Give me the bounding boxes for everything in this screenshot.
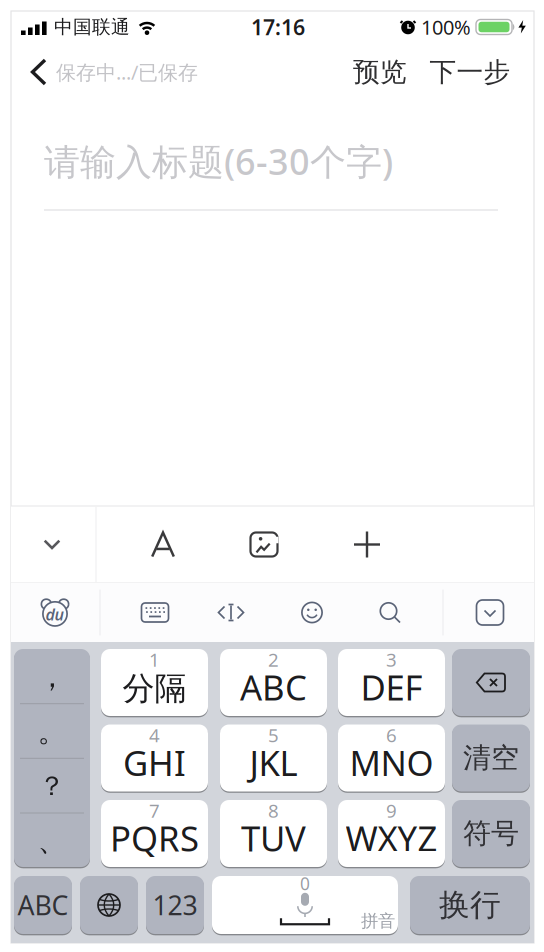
button[interactable]: 4 [101,724,208,791]
staticText: ？ [38,770,65,802]
button[interactable]: 1 [101,649,208,716]
staticText: 1 [149,647,160,672]
staticText: 5 [268,723,279,747]
staticText: 换行 [439,886,501,924]
staticText: MNO [349,739,433,785]
staticText: 9 [386,798,397,823]
staticText: 清空 [463,741,519,775]
staticText: 中国联通 [54,15,130,38]
staticText: 100% [421,14,471,40]
button[interactable]: ABC [14,876,72,934]
staticText: 。 [37,713,66,749]
staticText: 7 [149,798,160,823]
button[interactable]: 换行 [410,876,530,934]
staticText: TUV [241,815,306,861]
staticText: 2 [268,647,279,672]
button[interactable]: 2 [220,649,327,716]
button[interactable]: 清空 [452,724,530,791]
staticText: 分隔 [122,669,186,708]
staticText: 拼音 [361,910,395,932]
button[interactable]: 9 [338,800,445,867]
button[interactable]: 空格 [212,876,398,934]
staticText: WXYZ [345,815,437,861]
button[interactable]: 返回 [30,50,200,94]
staticText: 符号 [463,816,519,851]
staticText: ， [37,659,66,695]
button[interactable]: 收起工具栏 [470,590,510,634]
button[interactable]: 搜索 [368,590,412,634]
button[interactable]: 7 [101,800,208,867]
staticText: 保存中.../已保存 [56,59,198,85]
staticText: 6 [386,723,397,747]
staticText: GHI [123,739,186,785]
button[interactable]: 收起键盘 [30,522,74,566]
staticText: 请输入标题(6-30个字) [44,137,393,185]
staticText: 123 [152,887,197,923]
button[interactable]: 更多 [345,522,389,566]
staticText: ABC [240,664,307,710]
staticText: 、 [37,822,66,858]
button[interactable]: 6 [338,724,445,791]
button[interactable]: 插入图片 [242,522,286,566]
button[interactable]: 预览 [345,50,415,94]
staticText: ABC [17,887,68,923]
staticText: 0 [300,872,310,895]
button[interactable]: 文字样式 [141,522,185,566]
staticText: JKL [249,739,297,785]
staticText: 17:16 [251,13,305,41]
button[interactable]: 下一步 [415,50,525,94]
button[interactable]: 切换输入法 [80,876,138,934]
button[interactable]: 删除 [452,649,530,716]
staticText: 3 [386,647,397,672]
staticText: du [45,604,64,625]
staticText: PQRS [110,815,199,861]
button[interactable]: 123 [146,876,204,934]
button[interactable]: 键盘切换 [133,590,177,634]
staticText: 4 [149,723,160,747]
button[interactable]: 3 [338,649,445,716]
staticText: 预览 [353,56,407,88]
button[interactable]: 符号 [452,800,530,867]
button[interactable]: 8 [220,800,327,867]
button[interactable]: 5 [220,724,327,791]
button[interactable]: 表情 [290,590,334,634]
button[interactable]: 百度输入法 [33,590,77,634]
staticText: 下一步 [429,56,510,88]
staticText: DEF [360,664,422,710]
button[interactable]: 光标移动 [209,590,253,634]
staticText: 8 [268,798,279,823]
button[interactable]: 标点 [14,649,90,867]
